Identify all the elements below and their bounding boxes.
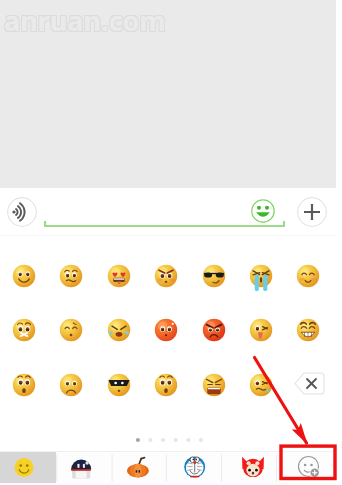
button[interactable]: Backspace bbox=[293, 371, 326, 396]
staticText: anruan.com bbox=[3, 2, 165, 39]
button[interactable]: Add sticker pack bbox=[276, 452, 336, 483]
staticText: anruan.com bbox=[4, 1, 166, 38]
button[interactable]: Emoji bbox=[288, 310, 328, 350]
button[interactable]: Emoji bbox=[51, 365, 91, 405]
staticText: anruan.com bbox=[4, 2, 166, 39]
staticText: anruan.com bbox=[5, 3, 167, 40]
button[interactable]: Doraemon stickers bbox=[166, 452, 221, 483]
button[interactable]: Recent emoji bbox=[0, 452, 56, 483]
button[interactable]: Emoji bbox=[241, 310, 281, 350]
button[interactable]: Emoji bbox=[4, 365, 44, 405]
button[interactable]: Robot stickers bbox=[56, 452, 111, 483]
button[interactable]: Emoji bbox=[51, 310, 91, 350]
button[interactable]: Emoji bbox=[146, 365, 186, 405]
button[interactable]: Emoji bbox=[51, 256, 91, 296]
button[interactable]: Emoji bbox=[241, 256, 281, 296]
staticText: anruan.com bbox=[3, 3, 165, 40]
button[interactable]: Emoji bbox=[4, 310, 44, 350]
staticText: anruan.com bbox=[5, 1, 167, 38]
staticText: anruan.com bbox=[3, 1, 165, 38]
button[interactable]: Emoji bbox=[194, 310, 234, 350]
button[interactable]: Emoji bbox=[288, 256, 328, 296]
button[interactable]: Emoji bbox=[146, 256, 186, 296]
button[interactable]: More options bbox=[297, 197, 327, 227]
staticText: anruan.com bbox=[4, 3, 166, 40]
button[interactable]: Voice message bbox=[7, 197, 37, 227]
staticText: anruan.com bbox=[5, 2, 167, 39]
button[interactable]: Emoji bbox=[99, 310, 139, 350]
button[interactable]: Emoji bbox=[241, 365, 281, 405]
button[interactable]: Emoji bbox=[194, 365, 234, 405]
button[interactable]: Emoji bbox=[99, 365, 139, 405]
button[interactable]: Emoji bbox=[4, 256, 44, 296]
button[interactable]: Emoji bbox=[146, 310, 186, 350]
button[interactable] bbox=[43, 192, 286, 232]
button[interactable]: Emoji bbox=[194, 256, 234, 296]
button[interactable]: Fox stickers bbox=[221, 452, 276, 483]
button[interactable]: Pumpkin stickers bbox=[112, 452, 166, 483]
button[interactable]: Emoji keyboard bbox=[248, 196, 278, 226]
button[interactable]: Emoji bbox=[99, 256, 139, 296]
